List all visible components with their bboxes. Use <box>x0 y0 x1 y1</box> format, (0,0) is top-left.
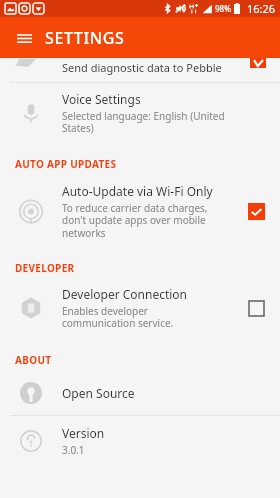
staticText: Version <box>62 425 105 441</box>
button[interactable]: Version <box>0 416 280 466</box>
button[interactable]: Developer Connection <box>0 279 280 337</box>
staticText: Send diagnostic data to Pebble <box>62 60 222 75</box>
staticText: Enables developer communication service. <box>62 304 174 330</box>
staticText: To reduce carrier data charges, don't up… <box>62 201 208 240</box>
button[interactable]: Voice Settings <box>0 83 280 143</box>
staticText: 3.0.1 <box>62 443 85 457</box>
button[interactable]: Send diagnostic data to Pebble <box>0 58 280 82</box>
button[interactable]: Developer Connection, disabled <box>249 301 264 316</box>
staticText: DEVELOPER <box>15 261 75 275</box>
staticText: Developer Connection <box>62 286 188 302</box>
staticText: SETTINGS <box>45 27 125 49</box>
staticText: Auto-Update via Wi-Fi Only <box>62 183 213 199</box>
staticText: ABOUT <box>15 353 52 367</box>
staticText: 16:26 <box>247 1 276 16</box>
staticText: Selected language: English (United State… <box>62 109 225 135</box>
staticText: 98% <box>215 3 231 14</box>
staticText: AUTO APP UPDATES <box>15 157 117 171</box>
button[interactable]: Open navigation drawer <box>8 22 40 54</box>
button[interactable]: Open Source <box>0 371 280 415</box>
button[interactable]: Auto-Update via Wi-Fi Only <box>0 175 280 247</box>
staticText: Voice Settings <box>62 91 141 107</box>
staticText: Open Source <box>62 385 135 401</box>
button[interactable]: Auto-Update via Wi-Fi Only, enabled <box>248 203 265 220</box>
